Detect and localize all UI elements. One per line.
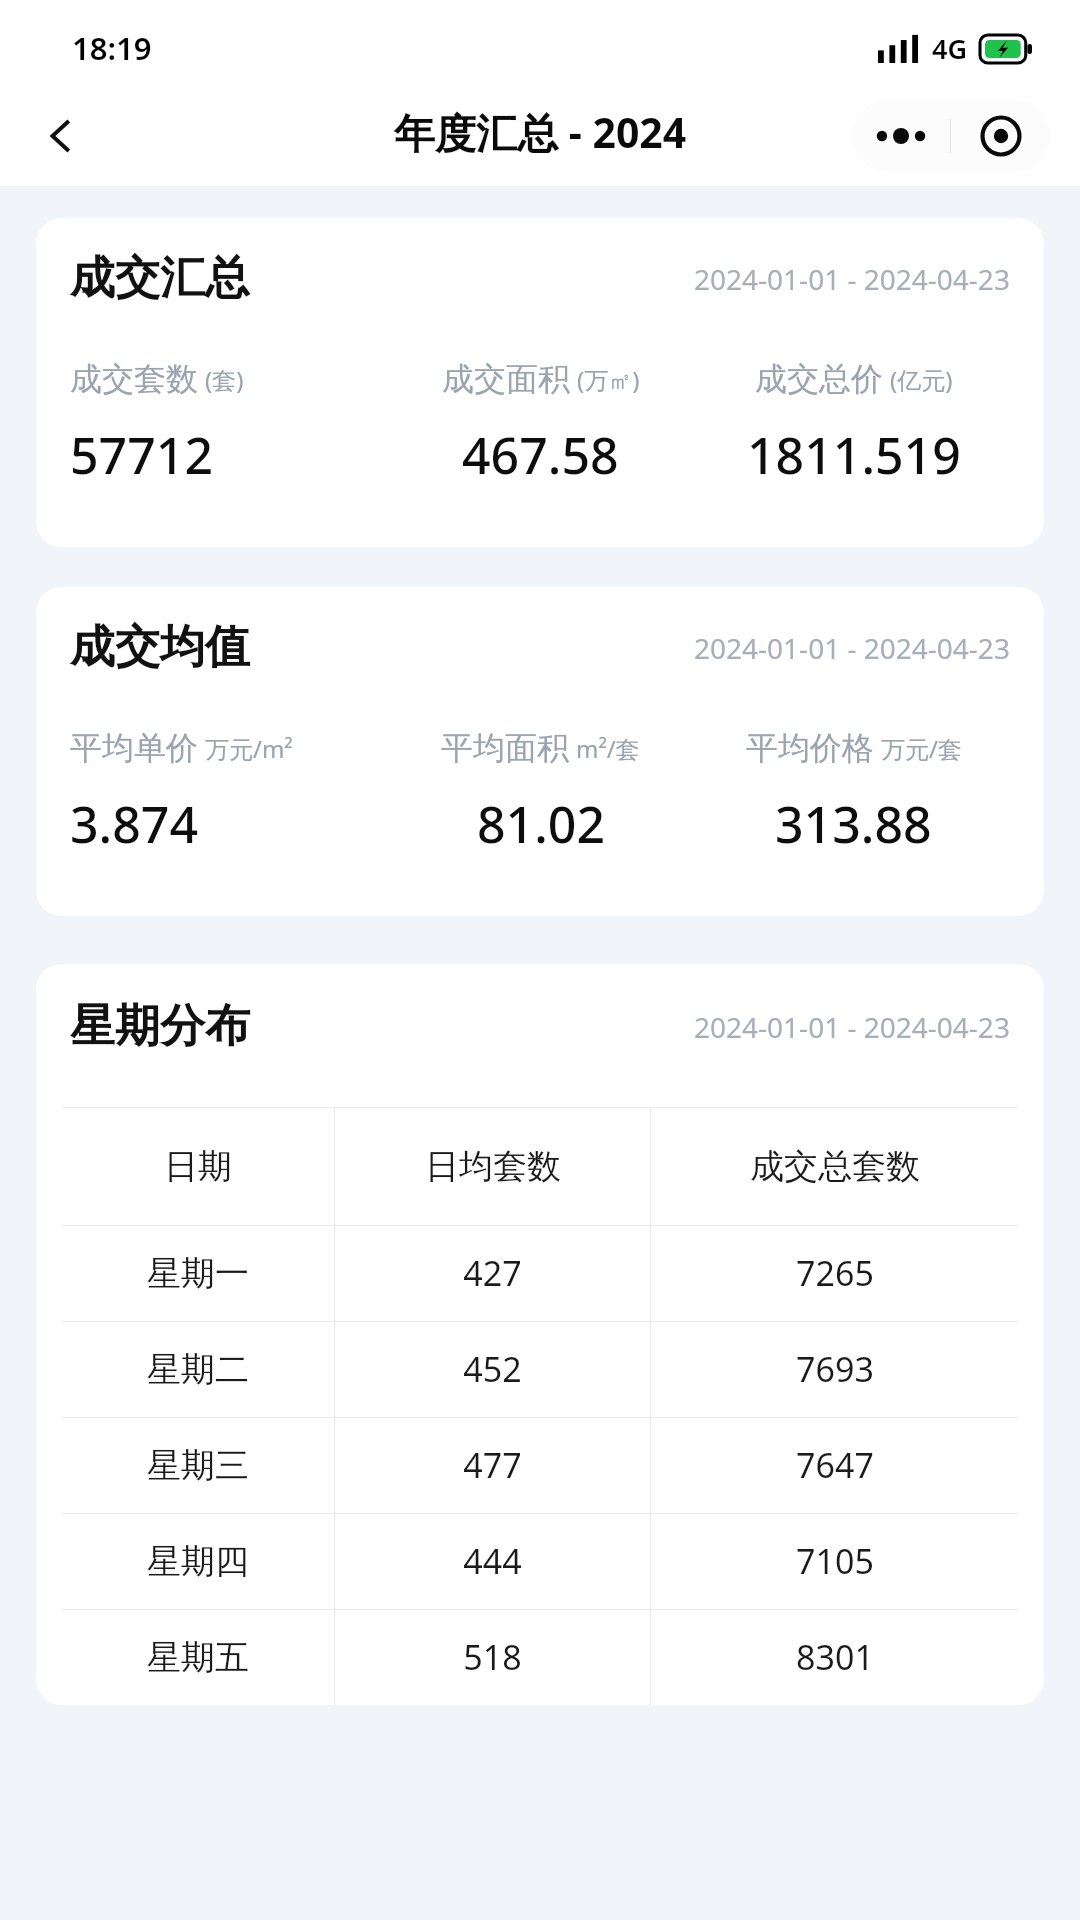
staticText: 1811.519 bbox=[747, 421, 961, 489]
staticText: 星期三 bbox=[147, 1444, 249, 1487]
staticText: 7693 bbox=[796, 1346, 874, 1392]
staticText: 星期四 bbox=[147, 1540, 249, 1583]
staticText: 2024-01-01 - 2024-04-23 bbox=[694, 260, 1010, 298]
staticText: 2024-01-01 - 2024-04-23 bbox=[694, 1008, 1010, 1046]
staticText: 7105 bbox=[796, 1538, 874, 1584]
staticText: 万元/m² bbox=[205, 732, 293, 765]
staticText: 444 bbox=[463, 1538, 522, 1584]
staticText: 日均套数 bbox=[425, 1145, 561, 1188]
staticText: 18:19 bbox=[72, 27, 152, 69]
staticText: 7647 bbox=[796, 1442, 874, 1488]
staticText: (万㎡) bbox=[577, 363, 640, 396]
staticText: 万元/套 bbox=[881, 732, 962, 765]
button[interactable]: 成交汇总 bbox=[36, 218, 1044, 547]
button[interactable]: 星期分布 bbox=[36, 964, 1044, 1705]
staticText: 星期一 bbox=[147, 1252, 249, 1295]
staticText: 3.874 bbox=[70, 790, 198, 858]
staticText: 427 bbox=[463, 1250, 522, 1296]
staticText: 星期五 bbox=[147, 1636, 249, 1679]
staticText: 平均单价 bbox=[70, 728, 198, 768]
staticText: 467.58 bbox=[462, 421, 619, 489]
staticText: m²/套 bbox=[576, 732, 640, 765]
staticText: 日期 bbox=[164, 1145, 232, 1188]
button[interactable]: Back bbox=[22, 96, 102, 176]
button[interactable]: More bbox=[852, 100, 950, 172]
staticText: (亿元) bbox=[890, 363, 953, 396]
staticText: (套) bbox=[205, 363, 244, 396]
staticText: 成交总价 bbox=[755, 359, 883, 399]
button[interactable]: 成交均值 bbox=[36, 587, 1044, 916]
staticText: 平均面积 bbox=[441, 728, 569, 768]
staticText: 313.88 bbox=[775, 790, 932, 858]
staticText: 成交汇总 bbox=[70, 250, 250, 307]
staticText: 81.02 bbox=[477, 790, 605, 858]
staticText: 57712 bbox=[70, 421, 213, 489]
staticText: 星期二 bbox=[147, 1348, 249, 1391]
staticText: 4G bbox=[932, 30, 968, 67]
staticText: 452 bbox=[463, 1346, 522, 1392]
staticText: 2024-01-01 - 2024-04-23 bbox=[694, 629, 1010, 667]
staticText: 成交总套数 bbox=[750, 1145, 920, 1188]
button[interactable]: Close bbox=[951, 100, 1050, 172]
staticText: 平均价格 bbox=[746, 728, 874, 768]
staticText: 7265 bbox=[796, 1250, 874, 1296]
staticText: 成交面积 bbox=[442, 359, 570, 399]
staticText: 成交套数 bbox=[70, 359, 198, 399]
staticText: 8301 bbox=[796, 1634, 874, 1680]
staticText: 年度汇总 - 2024 bbox=[394, 104, 687, 160]
staticText: 成交均值 bbox=[70, 619, 250, 676]
staticText: 518 bbox=[463, 1634, 522, 1680]
staticText: 星期分布 bbox=[70, 998, 250, 1055]
staticText: 477 bbox=[463, 1442, 522, 1488]
